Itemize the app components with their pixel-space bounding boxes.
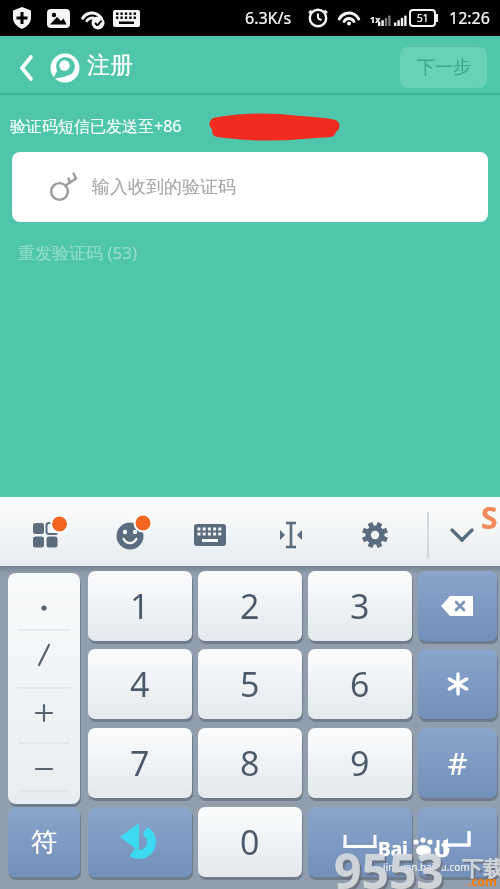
staticText: 4 bbox=[130, 661, 150, 707]
button[interactable]: 3 bbox=[308, 571, 412, 641]
button[interactable]: 2 bbox=[198, 571, 302, 641]
staticText: 2 bbox=[240, 583, 260, 629]
staticText: 51 bbox=[417, 11, 429, 25]
button[interactable]: 9 bbox=[308, 728, 412, 798]
button[interactable] bbox=[88, 807, 192, 877]
staticText: S bbox=[481, 497, 498, 537]
button[interactable] bbox=[274, 505, 330, 561]
button[interactable]: 1 bbox=[88, 571, 192, 641]
staticText: # bbox=[448, 743, 468, 784]
button[interactable] bbox=[30, 505, 86, 561]
staticText: 下一步 bbox=[417, 56, 471, 79]
staticText: 12:26 bbox=[449, 7, 490, 29]
staticText: jingyan.baidu.com bbox=[383, 860, 470, 874]
staticText: 9 bbox=[350, 740, 370, 786]
button[interactable] bbox=[418, 807, 497, 877]
button[interactable] bbox=[14, 50, 42, 86]
staticText: 8 bbox=[240, 740, 260, 786]
button[interactable]: 4 bbox=[88, 649, 192, 719]
staticText: 重发验证码 (53) bbox=[18, 241, 138, 264]
staticText: 验证码短信已发送至+86 bbox=[10, 115, 182, 137]
button[interactable] bbox=[114, 505, 170, 561]
button[interactable] bbox=[8, 573, 80, 804]
staticText: 1 bbox=[130, 583, 150, 629]
staticText: 9553 bbox=[336, 841, 446, 889]
staticText: 3 bbox=[350, 583, 370, 629]
button[interactable]: # bbox=[418, 728, 497, 798]
button[interactable] bbox=[359, 505, 415, 561]
staticText: 下载 bbox=[464, 858, 500, 884]
staticText: 符 bbox=[31, 826, 57, 859]
button[interactable] bbox=[418, 649, 497, 719]
staticText: 5 bbox=[240, 661, 260, 707]
button[interactable]: 下一步 bbox=[400, 47, 487, 88]
button[interactable]: 0 bbox=[198, 807, 302, 877]
staticText: 6 bbox=[350, 661, 370, 707]
staticText: 注册 bbox=[87, 51, 133, 80]
staticText: Bai bbox=[378, 836, 408, 860]
button[interactable]: 7 bbox=[88, 728, 192, 798]
staticText: 1x bbox=[370, 13, 381, 25]
button[interactable] bbox=[440, 505, 496, 561]
staticText: 0 bbox=[240, 819, 260, 865]
staticText: 输入收到的验证码 bbox=[92, 176, 236, 199]
button[interactable]: 6 bbox=[308, 649, 412, 719]
button[interactable]: 重发验证码 (53) bbox=[18, 238, 218, 266]
button[interactable] bbox=[308, 807, 412, 877]
button[interactable] bbox=[418, 571, 497, 641]
staticText: 7 bbox=[130, 740, 150, 786]
staticText: 6.3K/s bbox=[245, 7, 292, 29]
staticText: 下载 bbox=[462, 856, 500, 882]
button[interactable]: 符 bbox=[8, 807, 80, 877]
button[interactable]: 8 bbox=[198, 728, 302, 798]
button[interactable] bbox=[194, 505, 250, 561]
staticText: 9553 bbox=[334, 838, 444, 889]
button[interactable]: 输入收到的验证码 bbox=[12, 152, 488, 222]
staticText: .com bbox=[468, 873, 497, 889]
button[interactable]: 5 bbox=[198, 649, 302, 719]
